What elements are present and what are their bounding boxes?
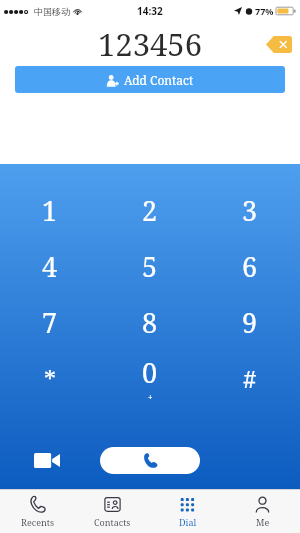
staticText: 5 bbox=[142, 248, 158, 285]
staticText: 77% bbox=[255, 5, 274, 17]
button[interactable]: Me bbox=[225, 495, 300, 528]
button[interactable]: 3 bbox=[200, 182, 300, 238]
staticText: 7 bbox=[42, 304, 58, 341]
staticText: Me bbox=[256, 516, 270, 528]
staticText: * bbox=[44, 362, 56, 395]
button[interactable]: 5 bbox=[100, 238, 200, 294]
staticText: # bbox=[243, 362, 257, 395]
staticText: 3 bbox=[242, 192, 258, 229]
staticText: 2 bbox=[142, 192, 158, 229]
button[interactable]: 4 bbox=[0, 238, 100, 294]
button[interactable]: 2 bbox=[100, 182, 200, 238]
button[interactable]: * bbox=[0, 350, 100, 406]
button[interactable]: 7 bbox=[0, 294, 100, 350]
button[interactable]: Recents bbox=[0, 495, 75, 528]
staticText: 6 bbox=[242, 248, 258, 285]
button[interactable]: # bbox=[200, 350, 300, 406]
staticText: Contacts bbox=[94, 516, 131, 528]
staticText: 123456 bbox=[98, 23, 202, 65]
staticText: 8 bbox=[142, 304, 158, 341]
button[interactable]: 8 bbox=[100, 294, 200, 350]
button[interactable]: 6 bbox=[200, 238, 300, 294]
button[interactable]: Add Contact bbox=[15, 66, 285, 93]
button[interactable]: 0 bbox=[100, 350, 200, 406]
button[interactable]: 1 bbox=[0, 182, 100, 238]
button[interactable]: Dial bbox=[150, 495, 225, 528]
button[interactable]: Call bbox=[100, 447, 200, 474]
button[interactable]: Video call bbox=[32, 449, 62, 471]
staticText: Dial bbox=[179, 516, 197, 528]
staticText: 4 bbox=[42, 248, 58, 285]
staticText: 1 bbox=[42, 192, 58, 229]
staticText: 14:32 bbox=[137, 4, 163, 18]
button[interactable]: 9 bbox=[200, 294, 300, 350]
staticText: Recents bbox=[21, 516, 54, 528]
staticText: 中国移动 bbox=[34, 6, 70, 17]
staticText: Add Contact bbox=[124, 72, 194, 88]
staticText: 0 bbox=[142, 354, 158, 391]
button[interactable]: Delete bbox=[266, 36, 292, 53]
button[interactable]: Contacts bbox=[75, 495, 150, 528]
staticText: 9 bbox=[242, 304, 258, 341]
staticText: + bbox=[148, 391, 153, 402]
